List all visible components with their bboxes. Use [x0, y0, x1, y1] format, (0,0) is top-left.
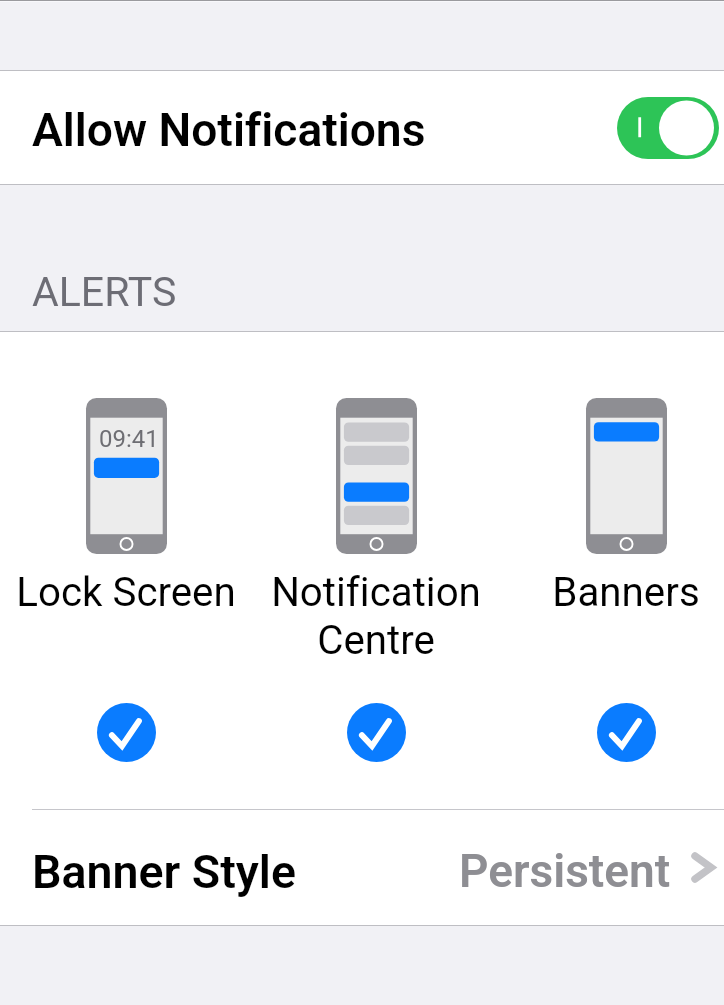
staticText: Banner Style — [32, 845, 296, 899]
button[interactable]: Notification Centre — [266, 372, 486, 787]
button[interactable]: Banners enabled — [597, 703, 656, 762]
button[interactable]: Allow Notifications — [0, 71, 724, 184]
staticText: Lock Screen — [16, 569, 236, 616]
button[interactable]: Notification Centre enabled — [347, 703, 406, 762]
staticText: Notification Centre — [271, 569, 481, 664]
staticText: ALERTS — [32, 268, 177, 316]
button[interactable]: Allow Notifications — [617, 97, 719, 159]
staticText: Banners — [552, 569, 700, 616]
staticText: 09:41 — [99, 425, 159, 453]
staticText: Persistent — [459, 844, 671, 898]
button[interactable]: Banner Style — [0, 814, 724, 929]
staticText: Allow Notifications — [32, 103, 426, 157]
button[interactable]: Banners — [516, 372, 724, 787]
button[interactable]: 09:41 — [16, 372, 236, 787]
button[interactable]: Lock Screen enabled — [97, 703, 156, 762]
